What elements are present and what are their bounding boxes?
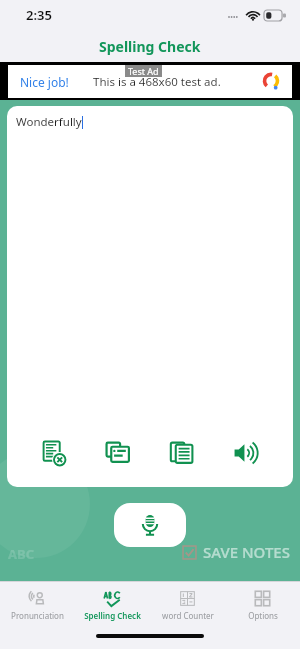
staticText: This is a 468x60 test ad. bbox=[93, 74, 221, 90]
button[interactable]: Copy bbox=[159, 430, 205, 476]
staticText: Options bbox=[248, 610, 278, 621]
button[interactable]: Spelling Check bbox=[75, 582, 150, 627]
button[interactable]: Voice input bbox=[114, 503, 186, 547]
staticText: SAVE NOTES bbox=[203, 542, 290, 562]
staticText: word Counter bbox=[162, 610, 214, 621]
staticText: Test Ad bbox=[128, 65, 159, 77]
staticText: Pronunciation bbox=[11, 610, 64, 621]
staticText: Spelling Check bbox=[99, 37, 201, 56]
staticText: Spelling Check bbox=[84, 610, 141, 621]
button[interactable]: Pronunciation bbox=[0, 582, 75, 627]
button[interactable]: Clear text bbox=[31, 430, 77, 476]
button[interactable]: Options bbox=[225, 582, 300, 627]
button[interactable]: Speak bbox=[223, 430, 269, 476]
button[interactable]: Paste bbox=[95, 430, 141, 476]
staticText: Nice job! bbox=[20, 74, 69, 90]
staticText: 2:35 bbox=[26, 6, 52, 24]
button[interactable]: word Counter bbox=[150, 582, 225, 627]
staticText: ABC bbox=[8, 545, 34, 563]
staticText: Wonderfully bbox=[16, 114, 82, 130]
